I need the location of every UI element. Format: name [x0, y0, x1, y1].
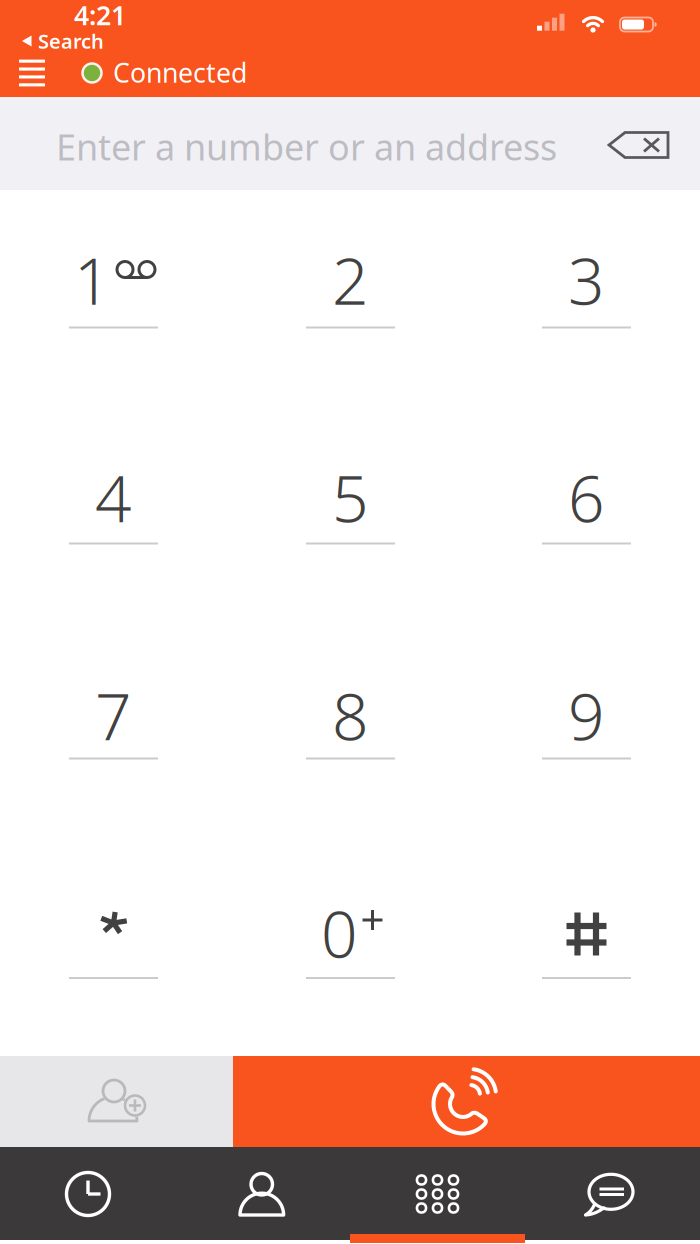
button[interactable]: 8: [265, 640, 435, 790]
button[interactable]: 5: [265, 422, 435, 572]
button[interactable]: History: [0, 1147, 175, 1240]
staticText: 8: [332, 673, 369, 758]
button[interactable]: 7: [28, 640, 198, 790]
button[interactable]: Keypad: [350, 1147, 525, 1240]
button[interactable]: 2: [265, 205, 435, 355]
staticText: 6: [568, 455, 605, 540]
staticText: 4: [95, 455, 132, 540]
staticText: 3: [568, 237, 605, 322]
button[interactable]: Add contact: [0, 1056, 233, 1147]
staticText: 4:21: [74, 0, 126, 33]
staticText: 9: [568, 673, 605, 758]
button[interactable]: 9: [501, 640, 671, 790]
button[interactable]: 3: [501, 205, 671, 355]
button[interactable]: 0: [265, 858, 435, 1008]
button[interactable]: Enter a number or an address: [0, 97, 700, 190]
staticText: 5: [332, 455, 369, 540]
staticText: 2: [332, 237, 369, 322]
button[interactable]: *: [28, 858, 198, 1008]
staticText: 0: [321, 890, 358, 975]
staticText: Connected: [113, 55, 247, 90]
button[interactable]: #: [501, 858, 671, 1008]
button[interactable]: Contacts: [175, 1147, 350, 1240]
staticText: 7: [95, 673, 132, 758]
button[interactable]: 1: [28, 205, 198, 355]
staticText: 1: [74, 237, 111, 322]
button[interactable]: 6: [501, 422, 671, 572]
button[interactable]: Menu: [10, 53, 54, 93]
button[interactable]: Messages: [525, 1147, 700, 1240]
button[interactable]: Delete: [607, 130, 671, 162]
button[interactable]: Call: [233, 1056, 700, 1147]
staticText: Search: [38, 28, 104, 54]
staticText: Enter a number or an address: [56, 123, 557, 170]
button[interactable]: 4: [28, 422, 198, 572]
